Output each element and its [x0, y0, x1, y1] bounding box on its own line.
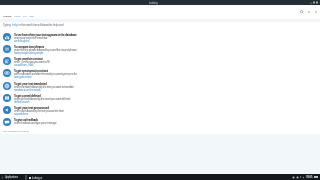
- button[interactable]: Close: [316, 1, 318, 4]
- staticText: enter _ for the gap you want to fill: [14, 60, 50, 64]
- staticText: 09:35: [306, 175, 313, 179]
- button[interactable]: Maximize: [313, 1, 315, 4]
- button[interactable]: Ludwig: [3, 15, 12, 18]
- button[interactable]: Help: [29, 15, 35, 18]
- staticText: enter your text in the search bar: [14, 36, 48, 40]
- button[interactable]: To compare two phrases: [3, 44, 320, 55]
- staticText: To get words in context: [14, 57, 43, 61]
- button[interactable]: Search: [299, 9, 304, 14]
- staticText: enter the first phrase followed by vs an…: [14, 48, 77, 52]
- staticText: caused him _ hide: [14, 63, 34, 67]
- button[interactable]: Applications: [1, 175, 18, 179]
- staticText: enter :translate followed by the text yo…: [14, 85, 74, 89]
- staticText: To see how often your text appears in th…: [14, 33, 77, 37]
- staticText: being set a man: [14, 75, 32, 79]
- staticText: translate to an the words: [14, 88, 41, 92]
- staticText: To compare two phrases: [14, 45, 45, 49]
- button[interactable]: Network: [296, 176, 299, 179]
- staticText: To get synonyms in context: [14, 69, 48, 73]
- button[interactable]: To give us feedback: [3, 117, 320, 128]
- staticText: say welcome: [14, 112, 29, 116]
- staticText: To give us feedback: [14, 118, 38, 122]
- staticText: in the search bar will show this help ca…: [18, 23, 64, 27]
- button[interactable]: To see how often your text appears in th…: [3, 32, 320, 43]
- button[interactable]: Minimize: [310, 1, 312, 4]
- staticText: Ludwig: [149, 1, 158, 5]
- button[interactable]: Volume: [302, 176, 305, 179]
- staticText: Applications: [5, 175, 18, 179]
- button[interactable]: :help: [12, 23, 18, 27]
- staticText: enter :feedback and type your message: [14, 121, 57, 125]
- staticText: with a narration and after the word you …: [14, 72, 77, 76]
- staticText: To get a word defined: [14, 94, 41, 98]
- button[interactable]: Got a problem? Email us: [3, 130, 30, 133]
- button[interactable]: To get your text pronounced: [3, 105, 320, 116]
- button[interactable]: To get words in context: [3, 56, 320, 67]
- button[interactable]: Pro: [23, 15, 27, 18]
- staticText: enter :say followed by the text you want…: [14, 109, 64, 113]
- button[interactable]: Location: [292, 176, 295, 179]
- staticText: To get your text pronounced: [14, 106, 49, 110]
- staticText: ludwig-ui: [32, 176, 42, 180]
- button[interactable]: Home: [14, 15, 21, 18]
- button[interactable]: Account: [306, 9, 311, 14]
- button[interactable]: More options: [313, 9, 318, 14]
- staticText: we thought of: [14, 39, 30, 43]
- staticText: To get your text translated: [14, 82, 47, 86]
- button[interactable]: ludwig-ui: [28, 175, 62, 180]
- staticText: define brunch: [14, 100, 30, 104]
- button[interactable]: To get synonyms in context: [3, 68, 320, 79]
- staticText: enter :define followed by the word you w…: [14, 97, 70, 101]
- button[interactable]: To get a word defined: [3, 93, 320, 104]
- staticText: Typing: [3, 23, 12, 27]
- button[interactable]: To get your text translated: [3, 81, 320, 92]
- staticText: fewer people vs less people: [14, 51, 43, 55]
